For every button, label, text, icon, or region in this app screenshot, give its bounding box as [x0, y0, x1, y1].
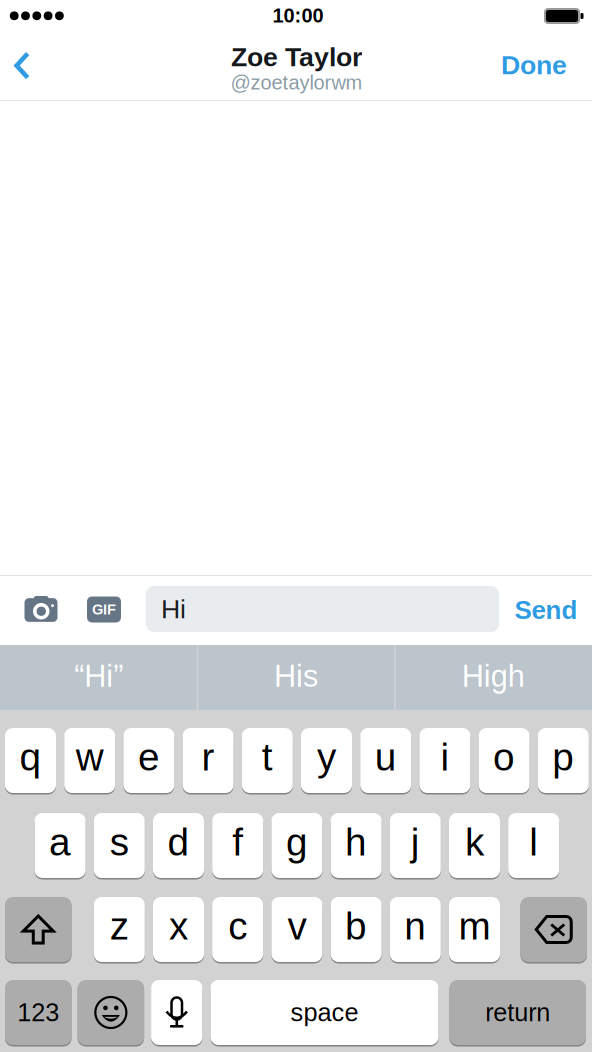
button[interactable]: Camera: [14, 582, 68, 636]
button[interactable]: q: [5, 728, 56, 793]
staticText: q: [19, 735, 41, 779]
button[interactable]: j: [390, 813, 441, 878]
button[interactable]: r: [183, 728, 234, 793]
staticText: GIF: [92, 601, 116, 618]
button[interactable]: Done: [485, 34, 583, 96]
staticText: “Hi”: [74, 659, 123, 693]
staticText: Zoe Taylor: [231, 42, 362, 72]
button[interactable]: w: [64, 728, 115, 793]
button[interactable]: Delete: [520, 897, 587, 962]
button[interactable]: “Hi”: [0, 645, 197, 710]
staticText: l: [529, 820, 538, 864]
staticText: v: [287, 904, 306, 948]
button[interactable]: k: [449, 813, 500, 878]
staticText: e: [138, 735, 160, 779]
staticText: o: [493, 735, 515, 779]
button[interactable]: h: [331, 813, 382, 878]
button[interactable]: His: [197, 645, 395, 710]
staticText: n: [404, 904, 426, 948]
button[interactable]: t: [242, 728, 293, 793]
button[interactable]: e: [123, 728, 174, 793]
staticText: Done: [501, 50, 567, 80]
staticText: j: [411, 820, 420, 864]
staticText: f: [232, 820, 243, 864]
button[interactable]: m: [449, 897, 500, 962]
staticText: High: [462, 659, 525, 693]
button[interactable]: Dictation: [151, 980, 202, 1045]
button[interactable]: Send: [500, 584, 592, 636]
button[interactable]: s: [94, 813, 145, 878]
button[interactable]: a: [35, 813, 86, 878]
staticText: 10:00: [272, 4, 323, 27]
button[interactable]: v: [271, 897, 322, 962]
button[interactable]: d: [153, 813, 204, 878]
button[interactable]: p: [538, 728, 589, 793]
button[interactable]: Emoji: [78, 980, 144, 1045]
button[interactable]: g: [271, 813, 322, 878]
staticText: r: [202, 735, 215, 779]
button[interactable]: u: [360, 728, 411, 793]
staticText: d: [167, 820, 189, 864]
button[interactable]: i: [419, 728, 470, 793]
button[interactable]: 123: [5, 980, 71, 1045]
staticText: c: [228, 904, 247, 948]
staticText: s: [110, 820, 129, 864]
staticText: i: [440, 735, 449, 779]
staticText: k: [465, 820, 484, 864]
staticText: g: [286, 820, 308, 864]
staticText: return: [485, 998, 550, 1027]
button[interactable]: b: [331, 897, 382, 962]
staticText: p: [552, 735, 574, 779]
button[interactable]: x: [153, 897, 204, 962]
staticText: w: [76, 735, 104, 779]
staticText: @zoetaylorwm: [230, 71, 362, 94]
button[interactable]: z: [94, 897, 145, 962]
staticText: 123: [17, 998, 59, 1027]
staticText: x: [169, 904, 188, 948]
staticText: z: [110, 904, 129, 948]
staticText: b: [345, 904, 367, 948]
staticText: a: [49, 820, 71, 864]
button[interactable]: c: [212, 897, 263, 962]
button[interactable]: n: [390, 897, 441, 962]
staticText: y: [317, 735, 336, 779]
button[interactable]: f: [212, 813, 263, 878]
staticText: u: [375, 735, 397, 779]
button[interactable]: space: [210, 980, 438, 1045]
button[interactable]: l: [508, 813, 559, 878]
staticText: space: [290, 998, 358, 1027]
staticText: t: [262, 735, 273, 779]
button[interactable]: o: [479, 728, 530, 793]
button[interactable]: return: [449, 980, 586, 1045]
button[interactable]: Send a GIF: [78, 583, 130, 635]
button[interactable]: High: [395, 645, 592, 710]
staticText: Hi: [161, 594, 186, 624]
button[interactable]: Shift: [5, 897, 71, 962]
button[interactable]: y: [301, 728, 352, 793]
staticText: Send: [514, 595, 577, 624]
staticText: His: [274, 659, 318, 693]
button[interactable]: Back: [0, 36, 56, 96]
staticText: m: [458, 904, 490, 948]
staticText: h: [345, 820, 367, 864]
